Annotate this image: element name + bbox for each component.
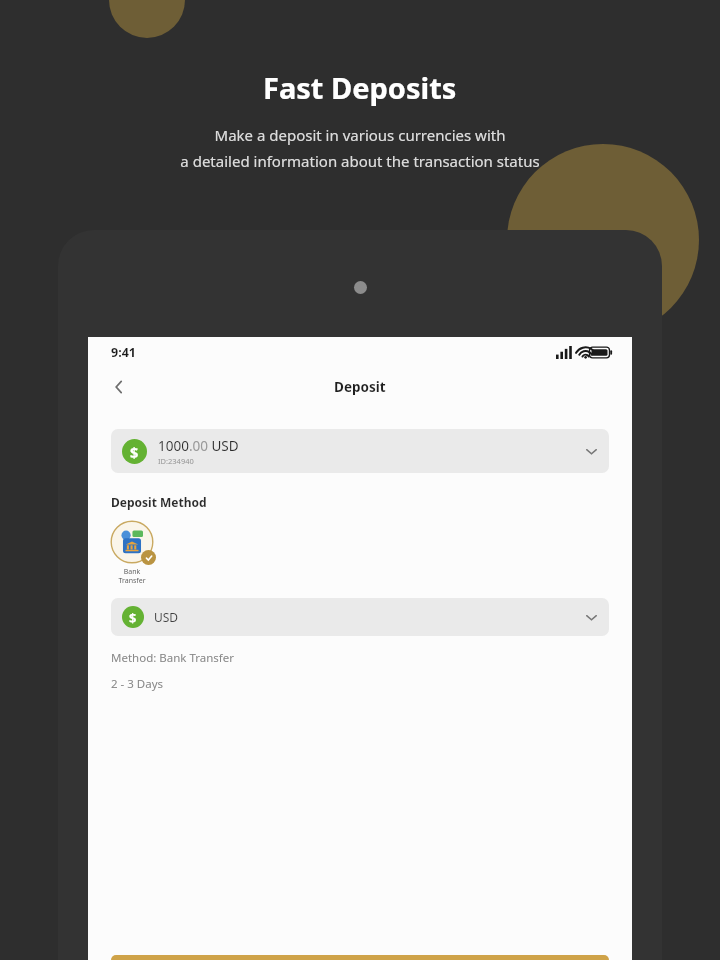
staticText: Bank Transfer [118,567,146,585]
staticText: Deposit Method [111,494,207,510]
staticText: ID:234940 [158,456,194,466]
staticText: Make a deposit in various currencies wit… [180,125,540,172]
button[interactable] [111,955,609,960]
staticText: 2 - 3 Days [111,676,164,692]
button[interactable]: Bank Transfer [109,520,155,585]
staticText: Method: Bank Transfer [111,650,235,666]
staticText: Fast Deposits [263,68,457,107]
button[interactable]: $ [111,598,609,636]
staticText: Deposit [334,378,386,396]
staticText: USD [154,609,179,625]
staticText: $ [129,609,137,626]
button[interactable]: $ [111,429,609,473]
staticText: 1000.00 USD [158,437,239,455]
staticText: $ [130,442,139,462]
staticText: 9:41 [111,344,136,361]
button[interactable]: Back [102,370,136,404]
